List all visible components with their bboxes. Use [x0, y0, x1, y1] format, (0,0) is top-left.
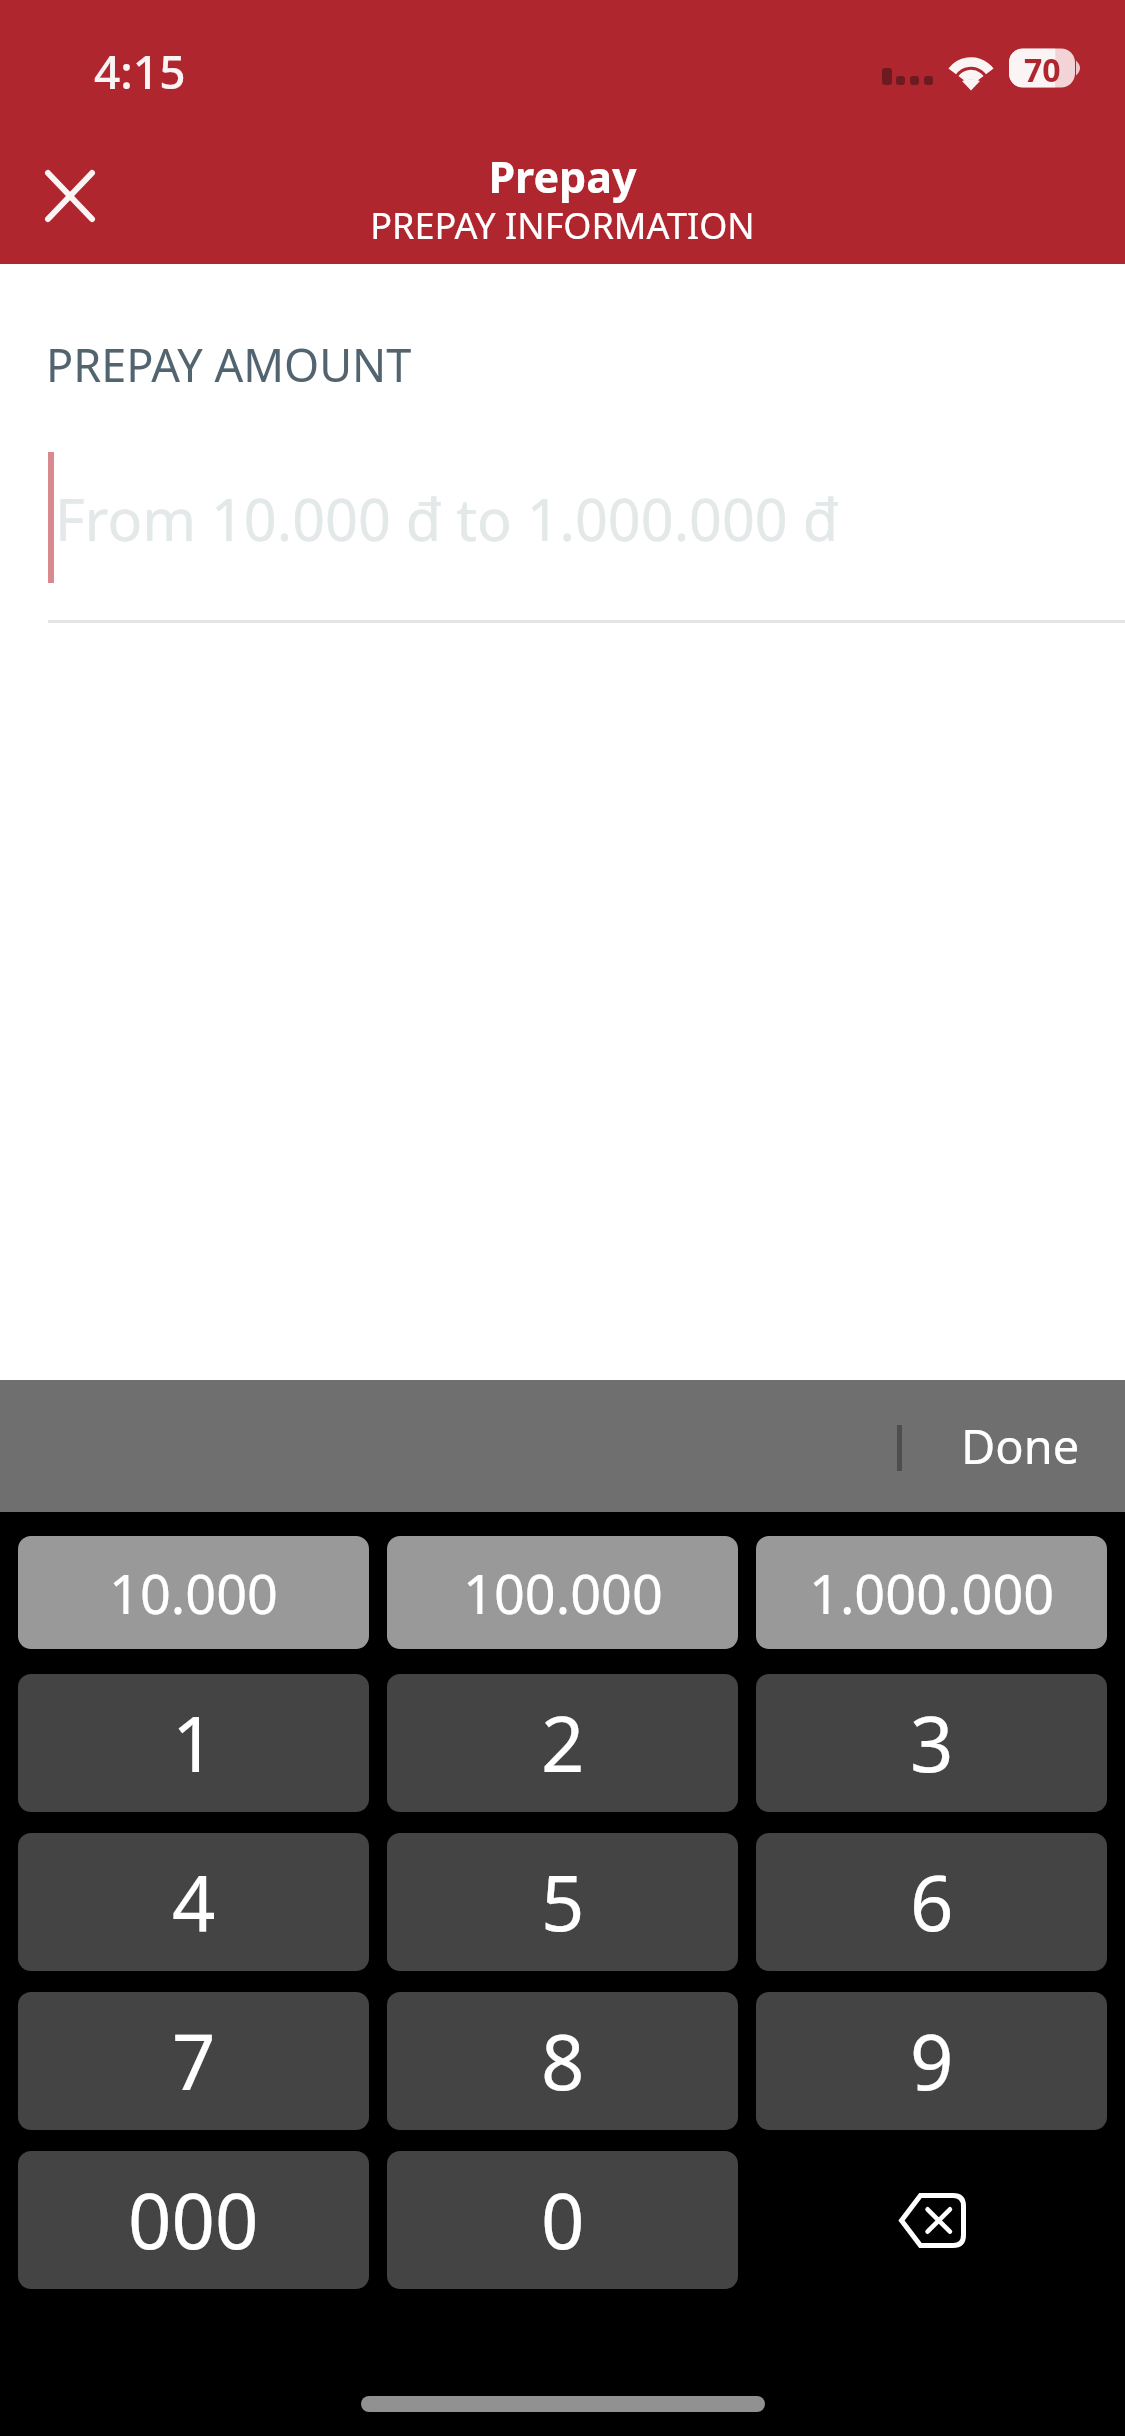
staticText: 3	[910, 1691, 954, 1795]
button[interactable]: Backspace	[756, 2151, 1107, 2289]
button[interactable]: 9	[756, 1992, 1107, 2130]
staticText: 0	[541, 2168, 585, 2272]
staticText: 6	[910, 1850, 954, 1954]
staticText: 10.000	[109, 1556, 278, 1630]
button[interactable]: 1	[18, 1674, 369, 1812]
staticText: 4	[172, 1850, 216, 1954]
staticText: 9	[910, 2009, 954, 2113]
button[interactable]: 4	[18, 1833, 369, 1971]
staticText: PREPAY INFORMATION	[0, 201, 1125, 250]
staticText: 100.000	[463, 1556, 663, 1630]
button[interactable]: 0	[387, 2151, 738, 2289]
button[interactable]: 7	[18, 1992, 369, 2130]
staticText: PREPAY AMOUNT	[46, 334, 412, 395]
button[interactable]: From 10.000 đ to 1.000.000 đ	[48, 430, 1125, 623]
button[interactable]: 6	[756, 1833, 1107, 1971]
staticText: Done	[961, 1414, 1080, 1478]
button[interactable]: 3	[756, 1674, 1107, 1812]
staticText: 000	[128, 2168, 259, 2272]
button[interactable]: 000	[18, 2151, 369, 2289]
staticText: 1	[172, 1691, 216, 1795]
staticText: 70	[1024, 48, 1061, 88]
button[interactable]: Close	[25, 151, 115, 241]
button[interactable]: 8	[387, 1992, 738, 2130]
staticText: 1.000.000	[809, 1556, 1055, 1630]
staticText: 5	[541, 1850, 585, 1954]
button[interactable]: 2	[387, 1674, 738, 1812]
button[interactable]: 100.000	[387, 1536, 738, 1649]
button[interactable]: Done	[920, 1380, 1120, 1512]
staticText: From 10.000 đ to 1.000.000 đ	[55, 480, 839, 558]
staticText: Prepay	[0, 147, 1125, 206]
staticText: 2	[541, 1691, 585, 1795]
button[interactable]: 10.000	[18, 1536, 369, 1649]
staticText: 8	[541, 2009, 585, 2113]
button[interactable]: 1.000.000	[756, 1536, 1107, 1649]
staticText: 4:15	[94, 40, 186, 103]
staticText: 7	[172, 2009, 216, 2113]
button[interactable]: 5	[387, 1833, 738, 1971]
